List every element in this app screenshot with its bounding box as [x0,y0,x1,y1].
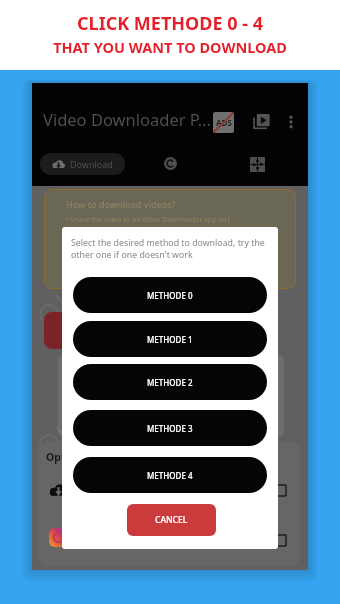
staticText: METHODE 1 [147,334,193,345]
staticText: How to download videos? [66,198,176,210]
button[interactable]: METHODE 3 [73,410,267,446]
staticText: METHODE 3 [147,423,193,434]
button[interactable]: Browser [164,157,177,170]
staticText: METHODE 2 [147,377,193,388]
button[interactable]: METHODE 4 [73,457,267,493]
button[interactable]: METHODE 0 [73,277,267,313]
staticText: Opti [46,450,69,464]
staticText: CANCEL [155,514,188,526]
button[interactable]: CANCEL [127,504,216,536]
staticText: • Share the video to All Video Downloade… [66,215,230,225]
staticText: METHODE 4 [147,470,193,481]
staticText: Select the desired method to download, t… [71,237,267,260]
staticText: ADS [216,117,232,128]
staticText: Download [70,158,113,170]
button[interactable]: More options [283,114,299,130]
button[interactable]: Library [253,113,270,130]
button[interactable]: Plugins [250,157,265,172]
button[interactable]: Remove ads [213,112,234,133]
button[interactable]: METHODE 1 [73,321,267,357]
staticText: CLICK METHODE 0 - 4 [0,11,340,36]
staticText: Video Downloader P... [43,108,211,130]
button[interactable]: METHODE 2 [73,364,267,400]
button[interactable]: Download [40,153,125,175]
staticText: THAT YOU WANT TO DOWNLOAD [0,37,340,57]
staticText: METHODE 0 [147,290,193,301]
